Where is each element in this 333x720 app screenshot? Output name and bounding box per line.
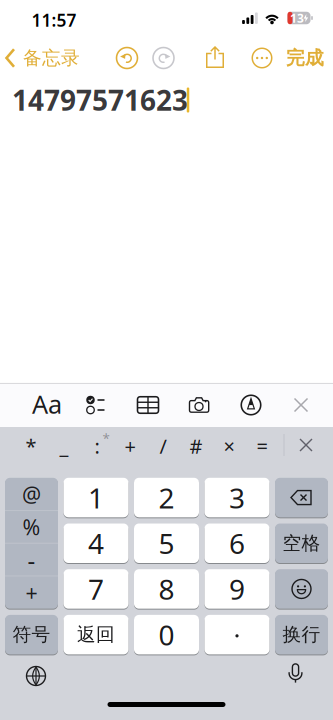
button[interactable]: 空格 xyxy=(275,523,328,563)
button[interactable] xyxy=(204,614,269,655)
button[interactable]: 6 xyxy=(204,523,269,563)
button[interactable]: # xyxy=(181,429,211,463)
staticText: 2 xyxy=(158,479,174,516)
button[interactable]: 1 xyxy=(63,477,128,518)
button[interactable]: 2 xyxy=(134,477,199,518)
staticText: 14797571623 xyxy=(12,81,188,119)
staticText: 1 xyxy=(88,479,104,516)
button[interactable] xyxy=(300,439,312,451)
staticText: / xyxy=(159,433,166,459)
button[interactable]: × xyxy=(214,429,244,463)
staticText: 空格 xyxy=(282,532,320,555)
staticText: 11:57 xyxy=(31,8,76,31)
staticText: 3 xyxy=(229,479,245,516)
button[interactable]: _ xyxy=(49,429,79,463)
button[interactable]: 0 xyxy=(134,614,199,655)
button[interactable]: / xyxy=(148,429,178,463)
staticText: 4 xyxy=(88,525,104,562)
button[interactable]: : xyxy=(82,429,112,463)
staticText: 备忘录 xyxy=(23,46,80,69)
button[interactable]: 5 xyxy=(134,523,199,563)
button[interactable] xyxy=(153,47,174,68)
staticText: : xyxy=(94,433,99,459)
button[interactable] xyxy=(85,395,104,414)
staticText: + xyxy=(124,433,135,459)
button[interactable] xyxy=(275,569,328,609)
staticText: 5 xyxy=(158,525,174,562)
button[interactable] xyxy=(275,477,328,518)
staticText: 换行 xyxy=(282,623,320,646)
button[interactable]: 换行 xyxy=(275,614,328,655)
staticText: 9 xyxy=(229,570,245,608)
button[interactable]: 3 xyxy=(204,477,269,518)
button[interactable]: 符号 xyxy=(5,614,58,655)
staticText: 6 xyxy=(229,525,245,562)
staticText: 返回 xyxy=(77,623,115,646)
button[interactable] xyxy=(241,395,261,415)
button[interactable]: + xyxy=(115,429,145,463)
button[interactable]: = xyxy=(247,429,277,463)
button[interactable] xyxy=(26,666,45,685)
button[interactable]: 8 xyxy=(134,569,199,609)
staticText: + xyxy=(25,578,37,606)
staticText: * xyxy=(102,429,109,447)
staticText: 完成 xyxy=(286,46,324,69)
staticText: 符号 xyxy=(12,623,50,646)
button[interactable]: 完成 xyxy=(286,46,324,69)
staticText: 13 xyxy=(290,10,304,26)
button[interactable]: + xyxy=(5,576,58,609)
staticText: * xyxy=(25,433,36,459)
button[interactable]: 9 xyxy=(204,569,269,609)
staticText: _ xyxy=(59,433,68,459)
button[interactable] xyxy=(137,397,158,413)
button[interactable]: 返回 xyxy=(63,614,128,655)
button[interactable]: * xyxy=(16,429,46,463)
button[interactable]: 4 xyxy=(63,523,128,563)
staticText: # xyxy=(189,433,202,459)
button[interactable]: Aa xyxy=(32,387,62,421)
staticText: × xyxy=(223,433,234,459)
button[interactable]: 7 xyxy=(63,569,128,609)
button[interactable]: @ xyxy=(5,478,58,510)
button[interactable] xyxy=(116,47,137,68)
staticText: Aa xyxy=(32,387,62,421)
button[interactable] xyxy=(206,46,224,68)
staticText: 8 xyxy=(158,570,174,608)
staticText: 7 xyxy=(88,570,104,608)
button[interactable]: % xyxy=(5,511,58,543)
staticText: - xyxy=(27,544,35,576)
button[interactable] xyxy=(294,398,307,411)
staticText: 0 xyxy=(158,616,174,653)
button[interactable]: - xyxy=(5,543,58,576)
button[interactable] xyxy=(288,663,303,683)
button[interactable] xyxy=(252,48,272,68)
staticText: @ xyxy=(22,480,41,508)
staticText: % xyxy=(22,513,40,541)
staticText: = xyxy=(256,433,267,459)
button[interactable] xyxy=(188,396,209,414)
button[interactable]: 备忘录 xyxy=(5,46,80,69)
